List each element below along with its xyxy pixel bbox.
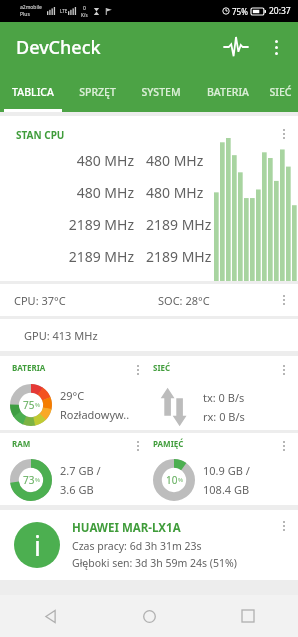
staticText: 108.4 GB [203, 482, 250, 497]
button[interactable]: More [273, 288, 295, 312]
staticText: PAMIĘĆ [153, 438, 184, 449]
staticText: 2189 MHz [146, 215, 212, 234]
button[interactable]: More [273, 434, 295, 458]
staticText: BATERIA [207, 85, 249, 99]
staticText: 2189 MHz [0, 247, 134, 266]
staticText: SYSTEM [141, 85, 181, 99]
staticText: TABLICA [12, 85, 54, 99]
button[interactable]: BATERIA [0, 356, 149, 430]
staticText: STAN CPU [16, 128, 65, 142]
staticText: Głęboki sen: 3d 3h 59m 24s (51%) [72, 556, 237, 570]
staticText: 10.9 GB / [203, 463, 250, 478]
staticText: 480 MHz [146, 151, 204, 170]
button[interactable]: SPRZĘT [66, 72, 128, 112]
staticText: DevCheck [16, 35, 101, 60]
staticText: 10 [166, 473, 178, 487]
staticText: i [34, 527, 41, 564]
staticText: 480 MHz [0, 151, 134, 170]
staticText: SIEĆ [153, 362, 171, 373]
button[interactable]: More [273, 358, 295, 382]
staticText: % [35, 476, 40, 484]
button[interactable]: Home [129, 596, 169, 636]
button[interactable]: Back [30, 596, 70, 636]
staticText: 0 [83, 5, 86, 12]
staticText: Rozładowyw.. [60, 407, 130, 422]
button[interactable]: STAN CPU [0, 116, 298, 281]
staticText: 2189 MHz [0, 215, 134, 234]
button[interactable]: More [127, 434, 149, 458]
staticText: BATERIA [12, 362, 46, 373]
button[interactable]: SIEĆ [149, 356, 298, 430]
staticText: 480 MHz [146, 183, 204, 202]
staticText: 20:37 [269, 5, 291, 17]
button[interactable]: BATERIA [194, 72, 262, 112]
staticText: LTE [60, 8, 68, 14]
staticText: % [178, 476, 183, 484]
staticText: HUAWEI MAR-LX1A [72, 520, 181, 536]
staticText: 29°C [60, 388, 85, 403]
staticText: RAM [12, 438, 31, 449]
staticText: Czas pracy: 6d 3h 31m 23s [72, 539, 202, 553]
button[interactable]: More [273, 514, 295, 538]
staticText: 73 [23, 473, 35, 487]
button[interactable]: Recent apps [228, 596, 268, 636]
staticText: 75% [232, 6, 248, 17]
button[interactable]: PAMIĘĆ [149, 433, 298, 505]
staticText: rx: 0 B/s [203, 409, 245, 424]
button[interactable]: SIEĆ [262, 72, 298, 112]
button[interactable]: TABLICA [0, 72, 66, 112]
staticText: SPRZĘT [79, 85, 116, 99]
staticText: 2189 MHz [146, 247, 212, 266]
staticText: CPU: 37°C [14, 293, 66, 308]
staticText: % [35, 401, 40, 409]
staticText: tx: 0 B/s [203, 390, 245, 405]
staticText: 2.7 GB / [60, 463, 101, 478]
staticText: K/s [81, 12, 88, 18]
staticText: 75 [23, 398, 35, 412]
staticText: 480 MHz [0, 183, 134, 202]
staticText: Plus [20, 11, 30, 18]
button[interactable]: More [273, 122, 295, 146]
button[interactable]: More [127, 358, 149, 382]
staticText: SOC: 28°C [158, 293, 210, 308]
button[interactable]: i [0, 510, 298, 580]
staticText: SIEĆ [269, 85, 292, 99]
button[interactable]: Live monitor [216, 27, 256, 67]
button[interactable]: SYSTEM [128, 72, 194, 112]
button[interactable]: RAM [0, 433, 149, 505]
button[interactable]: More options [256, 27, 296, 67]
staticText: 3.6 GB [60, 482, 94, 497]
button[interactable]: CPU: 37°C [0, 284, 298, 316]
staticText: a2mobile [20, 4, 42, 11]
button[interactable]: GPU: 413 MHz [0, 319, 298, 351]
staticText: GPU: 413 MHz [24, 328, 98, 343]
